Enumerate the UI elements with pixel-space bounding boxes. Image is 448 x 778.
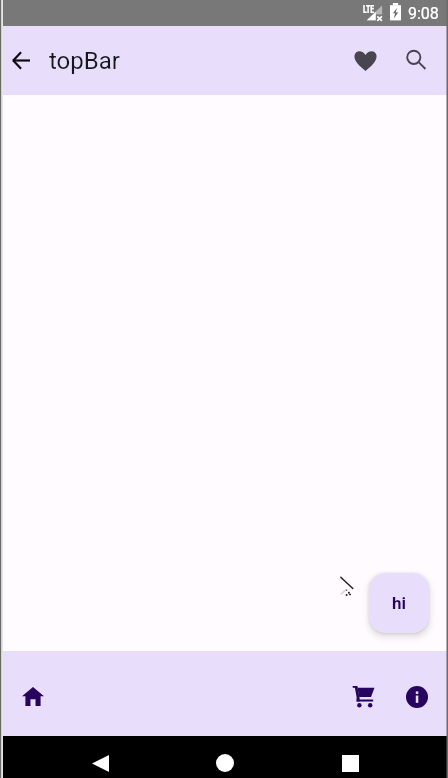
staticText: topBar	[49, 47, 120, 75]
staticText: 9:08	[408, 4, 439, 23]
button[interactable]: hi	[369, 573, 429, 633]
button[interactable]: Home	[9, 670, 57, 718]
button[interactable]: Favorite	[344, 37, 392, 85]
button[interactable]: Info	[393, 670, 441, 718]
button[interactable]: Search	[392, 37, 440, 85]
button[interactable]: Home	[201, 745, 249, 778]
button[interactable]: Navigate up	[0, 37, 41, 85]
button[interactable]: Recent apps	[326, 745, 374, 778]
button[interactable]: Cart	[339, 670, 387, 718]
button[interactable]: Back	[76, 745, 124, 778]
staticText: hi	[392, 593, 407, 613]
staticText: LTE	[363, 4, 375, 16]
